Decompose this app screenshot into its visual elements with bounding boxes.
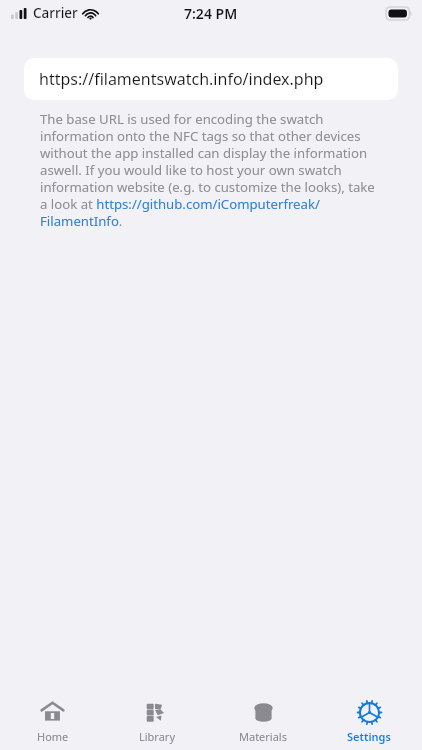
staticText: 7:24 PM	[184, 4, 238, 23]
button[interactable]: Home	[0, 690, 105, 744]
staticText: Carrier	[33, 4, 78, 22]
staticText: Settings	[347, 729, 391, 744]
button[interactable]: Materials	[210, 690, 316, 744]
staticText: Library	[139, 729, 176, 744]
staticText: Home	[37, 729, 69, 744]
staticText: Materials	[239, 729, 287, 744]
button[interactable]: Library	[105, 690, 210, 744]
staticText: The base URL is used for encoding the sw…	[40, 110, 382, 230]
button[interactable]: https://filamentswatch.info/index.php	[24, 58, 398, 100]
button[interactable]: Settings	[316, 690, 422, 744]
staticText: https://filamentswatch.info/index.php	[39, 68, 324, 90]
